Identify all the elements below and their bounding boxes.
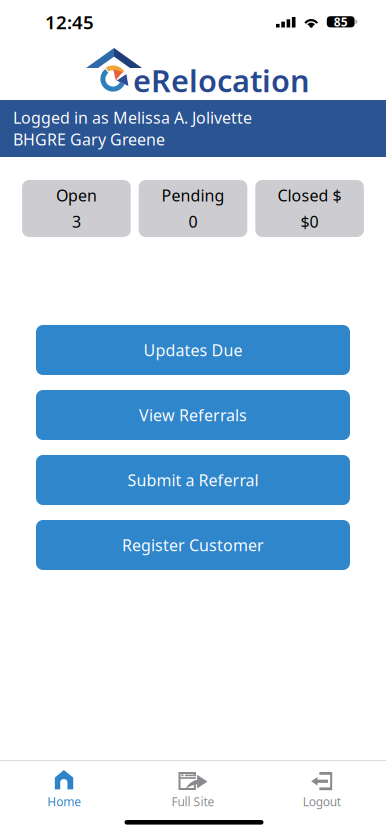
button[interactable]: Closed $ (255, 180, 364, 237)
button[interactable]: Logout (257, 769, 386, 814)
staticText: $0 (301, 211, 319, 232)
staticText: eRelocation (133, 60, 310, 101)
button[interactable]: Open (22, 180, 131, 237)
button[interactable]: Submit a Referral (36, 455, 350, 505)
button[interactable]: Register Customer (36, 520, 350, 570)
staticText: Pending (161, 185, 224, 206)
button[interactable]: Pending (139, 180, 247, 237)
staticText: Logged in as Melissa A. Jolivette (13, 107, 252, 128)
staticText: 12:45 (45, 9, 94, 34)
staticText: Closed $ (278, 185, 342, 206)
staticText: Register Customer (122, 534, 264, 556)
staticText: BHGRE Gary Greene (13, 129, 165, 150)
button[interactable]: Updates Due (36, 325, 350, 375)
staticText: Open (56, 185, 97, 206)
button[interactable]: Full Site (129, 769, 257, 814)
staticText: Updates Due (143, 339, 242, 361)
staticText: 85 (334, 14, 348, 30)
staticText: Full Site (171, 793, 214, 809)
staticText: Submit a Referral (127, 469, 258, 491)
staticText: View Referrals (139, 404, 247, 426)
button[interactable]: Home (0, 769, 129, 814)
button[interactable]: View Referrals (36, 390, 350, 440)
staticText: Home (47, 793, 81, 809)
staticText: Logout (303, 793, 341, 809)
staticText: 3 (72, 211, 81, 232)
staticText: 0 (188, 211, 197, 232)
